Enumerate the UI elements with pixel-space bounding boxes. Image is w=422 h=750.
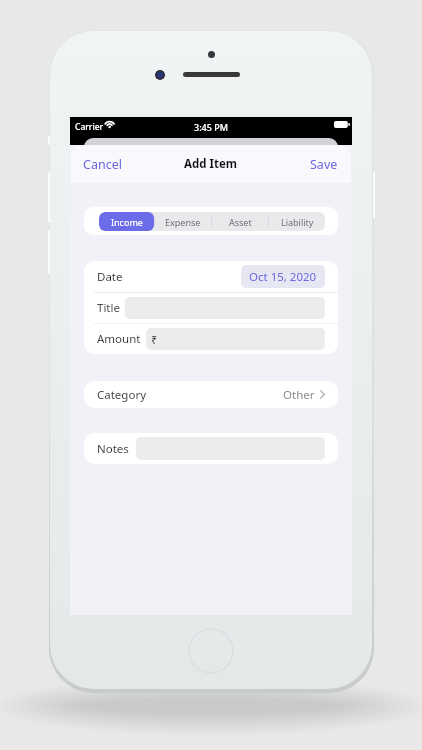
staticText: Save <box>310 156 338 173</box>
staticText: ₹ <box>151 332 158 347</box>
button[interactable]: Cancel <box>71 146 134 183</box>
button[interactable]: Liability <box>269 212 325 231</box>
staticText: Asset <box>229 216 252 228</box>
staticText: Liability <box>281 216 314 228</box>
staticText: Category <box>97 387 147 403</box>
staticText: Date <box>97 269 123 285</box>
staticText: Income <box>111 216 143 228</box>
staticText: Amount <box>97 331 141 347</box>
staticText: Other <box>283 387 315 403</box>
button[interactable]: ₹ <box>146 328 325 350</box>
staticText: Title <box>97 300 120 316</box>
staticText: Notes <box>97 441 129 457</box>
staticText: Carrier <box>75 121 104 133</box>
staticText: Oct 15, 2020 <box>249 269 317 285</box>
button[interactable]: Income <box>99 212 154 231</box>
staticText: 3:45 PM <box>194 121 228 133</box>
button[interactable]: Oct 15, 2020 <box>241 265 325 288</box>
staticText: Cancel <box>83 156 122 173</box>
button[interactable]: Asset <box>212 212 268 231</box>
staticText: Expense <box>165 216 201 228</box>
staticText: Add Item <box>184 156 238 172</box>
button[interactable]: Category <box>84 381 338 408</box>
button[interactable]: Expense <box>155 212 211 231</box>
button[interactable]: Save <box>297 146 351 183</box>
